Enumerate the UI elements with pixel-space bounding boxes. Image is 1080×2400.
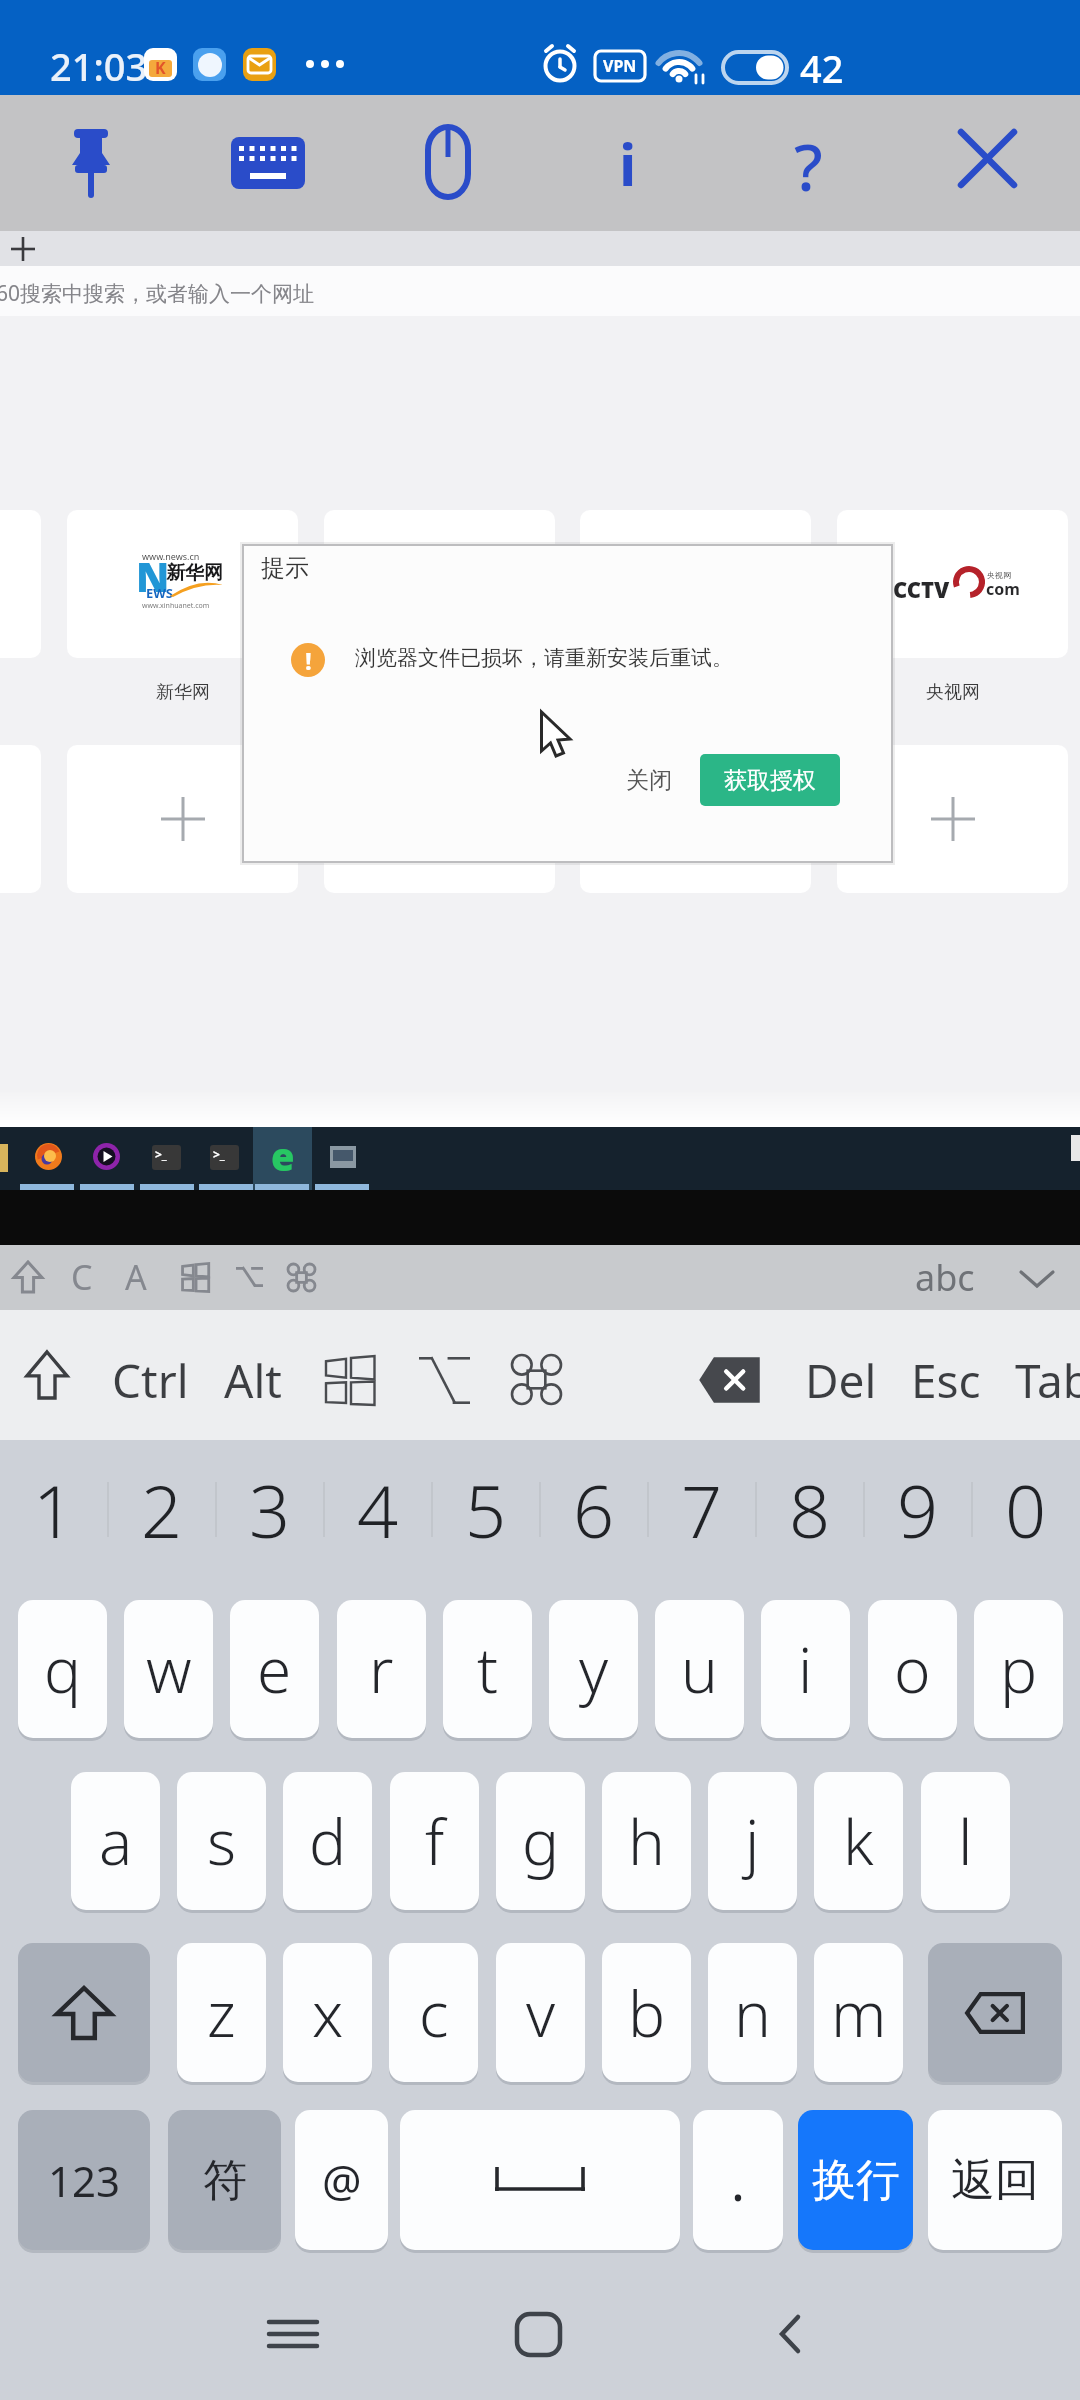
button[interactable]: Alt: [198, 1330, 308, 1430]
staticText: m: [831, 1971, 887, 2055]
button[interactable]: 2: [110, 1445, 214, 1575]
button[interactable]: j: [708, 1772, 797, 1910]
button[interactable]: [697, 1355, 762, 1405]
button[interactable]: i: [588, 123, 668, 203]
button[interactable]: [320, 1350, 380, 1410]
button[interactable]: 6: [542, 1445, 646, 1575]
staticText: C: [71, 1254, 93, 1300]
button[interactable]: c: [389, 1943, 478, 2082]
button[interactable]: u: [655, 1600, 744, 1738]
button[interactable]: b: [602, 1943, 691, 2082]
button[interactable]: y: [549, 1600, 638, 1738]
staticText: r: [369, 1627, 394, 1711]
staticText: 返回: [951, 2153, 1039, 2208]
button[interactable]: r: [337, 1600, 426, 1738]
button[interactable]: [837, 745, 1068, 893]
button[interactable]: 3: [218, 1445, 322, 1575]
button[interactable]: [928, 1943, 1062, 2082]
button[interactable]: z: [177, 1943, 266, 2082]
button[interactable]: x: [283, 1943, 372, 2082]
button[interactable]: l: [921, 1772, 1010, 1910]
button[interactable]: 符: [168, 2110, 281, 2250]
button[interactable]: f: [390, 1772, 479, 1910]
button[interactable]: 4: [326, 1445, 430, 1575]
button[interactable]: abc: [895, 1247, 995, 1307]
button[interactable]: g: [496, 1772, 585, 1910]
button[interactable]: i: [761, 1600, 850, 1738]
button[interactable]: n: [708, 1943, 797, 2082]
button[interactable]: [18, 1943, 150, 2082]
button[interactable]: Ctrl: [90, 1330, 210, 1430]
button[interactable]: www.news.cn: [67, 510, 298, 658]
staticText: v: [526, 1971, 556, 2055]
button[interactable]: .: [693, 2110, 783, 2250]
button[interactable]: CCTV: [837, 510, 1068, 658]
button[interactable]: 关闭: [611, 757, 686, 804]
button[interactable]: o: [868, 1600, 957, 1738]
staticText: 4: [357, 1461, 399, 1559]
button[interactable]: 0: [974, 1445, 1078, 1575]
button[interactable]: Tab: [998, 1330, 1080, 1430]
staticText: www.xinhuanet.com: [142, 601, 210, 611]
button[interactable]: [267, 2312, 319, 2356]
button[interactable]: t: [443, 1600, 532, 1738]
button[interactable]: [770, 2313, 814, 2357]
staticText: CCTV: [893, 574, 950, 604]
button[interactable]: q: [18, 1600, 107, 1738]
button[interactable]: [324, 510, 555, 658]
button[interactable]: 获取授权: [700, 754, 840, 806]
staticText: ?: [794, 123, 823, 203]
button[interactable]: 7: [650, 1445, 754, 1575]
button[interactable]: @: [295, 2110, 388, 2250]
button[interactable]: [948, 123, 1028, 203]
staticText: g: [522, 1799, 560, 1883]
button[interactable]: e: [230, 1600, 319, 1738]
button[interactable]: 返回: [928, 2110, 1062, 2250]
button[interactable]: [228, 123, 308, 203]
button[interactable]: [18, 1340, 78, 1410]
button[interactable]: 1: [2, 1445, 106, 1575]
staticText: 符: [203, 2153, 247, 2208]
button[interactable]: h: [602, 1772, 691, 1910]
button[interactable]: Esc: [891, 1330, 1001, 1430]
staticText: u: [681, 1627, 718, 1711]
button[interactable]: [507, 1350, 567, 1410]
button[interactable]: 123: [18, 2110, 150, 2250]
button[interactable]: [0, 231, 1080, 266]
button[interactable]: [580, 745, 811, 893]
staticText: 浏览器文件已损坏，请重新安装后重试。: [355, 645, 733, 671]
button[interactable]: [408, 123, 488, 203]
button[interactable]: Del: [786, 1330, 896, 1430]
button[interactable]: [414, 1350, 474, 1410]
button[interactable]: s: [177, 1772, 266, 1910]
staticText: Ctrl: [112, 1349, 189, 1412]
button[interactable]: [324, 745, 555, 893]
staticText: 7: [681, 1461, 723, 1559]
button[interactable]: w: [124, 1600, 213, 1738]
button[interactable]: 8: [758, 1445, 862, 1575]
button[interactable]: [515, 2312, 562, 2357]
button[interactable]: 换行: [798, 2110, 913, 2250]
button[interactable]: v: [496, 1943, 585, 2082]
button[interactable]: p: [974, 1600, 1063, 1738]
button[interactable]: [580, 510, 811, 658]
button[interactable]: 5: [434, 1445, 538, 1575]
staticText: b: [628, 1971, 666, 2055]
button[interactable]: [400, 2110, 680, 2250]
button[interactable]: a: [71, 1772, 160, 1910]
button[interactable]: [67, 745, 298, 893]
button[interactable]: 9: [866, 1445, 970, 1575]
button[interactable]: k: [814, 1772, 903, 1910]
staticText: 42: [800, 42, 844, 94]
button[interactable]: A: [108, 1247, 164, 1307]
button[interactable]: ?: [768, 123, 848, 203]
staticText: www.news.cn: [142, 550, 200, 562]
button[interactable]: m: [814, 1943, 903, 2082]
button[interactable]: [51, 123, 131, 203]
staticText: @: [322, 2150, 362, 2210]
button[interactable]: d: [283, 1772, 372, 1910]
staticText: 央视网: [926, 681, 980, 704]
button[interactable]: C: [54, 1247, 110, 1307]
